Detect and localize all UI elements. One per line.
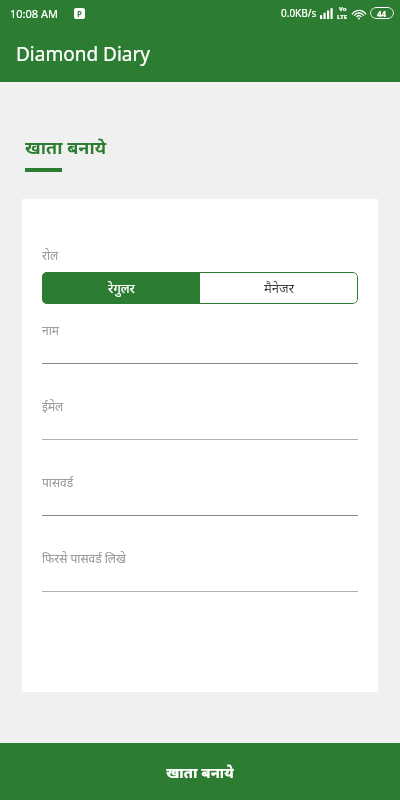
staticText: 10:08 AM <box>10 6 58 21</box>
staticText: ईमेल <box>42 398 64 414</box>
staticText: Diamond Diary <box>16 41 151 67</box>
button[interactable]: रेगुलर <box>42 272 200 304</box>
staticText: खाता बनाये <box>25 135 107 160</box>
button[interactable]: पासवर्ड <box>42 474 358 516</box>
staticText: Vo <box>339 5 347 13</box>
staticText: नाम <box>42 322 59 338</box>
button[interactable]: नाम <box>42 322 358 364</box>
staticText: 44 <box>377 8 387 19</box>
button[interactable]: खाता बनाये <box>0 743 400 800</box>
staticText: P <box>77 8 82 19</box>
button[interactable]: फिरसे पासवर्ड लिखे <box>42 550 358 592</box>
staticText: मैनेजर <box>264 279 294 297</box>
staticText: रेगुलर <box>108 279 135 297</box>
button[interactable]: ईमेल <box>42 398 358 440</box>
staticText: खाता बनाये <box>166 762 234 782</box>
button[interactable]: मैनेजर <box>200 272 358 304</box>
staticText: फिरसे पासवर्ड लिखे <box>42 550 126 566</box>
staticText: पासवर्ड <box>42 474 74 490</box>
staticText: रोल <box>42 247 59 263</box>
staticText: 0.0KB/s <box>281 6 317 20</box>
staticText: LTE <box>337 13 348 21</box>
